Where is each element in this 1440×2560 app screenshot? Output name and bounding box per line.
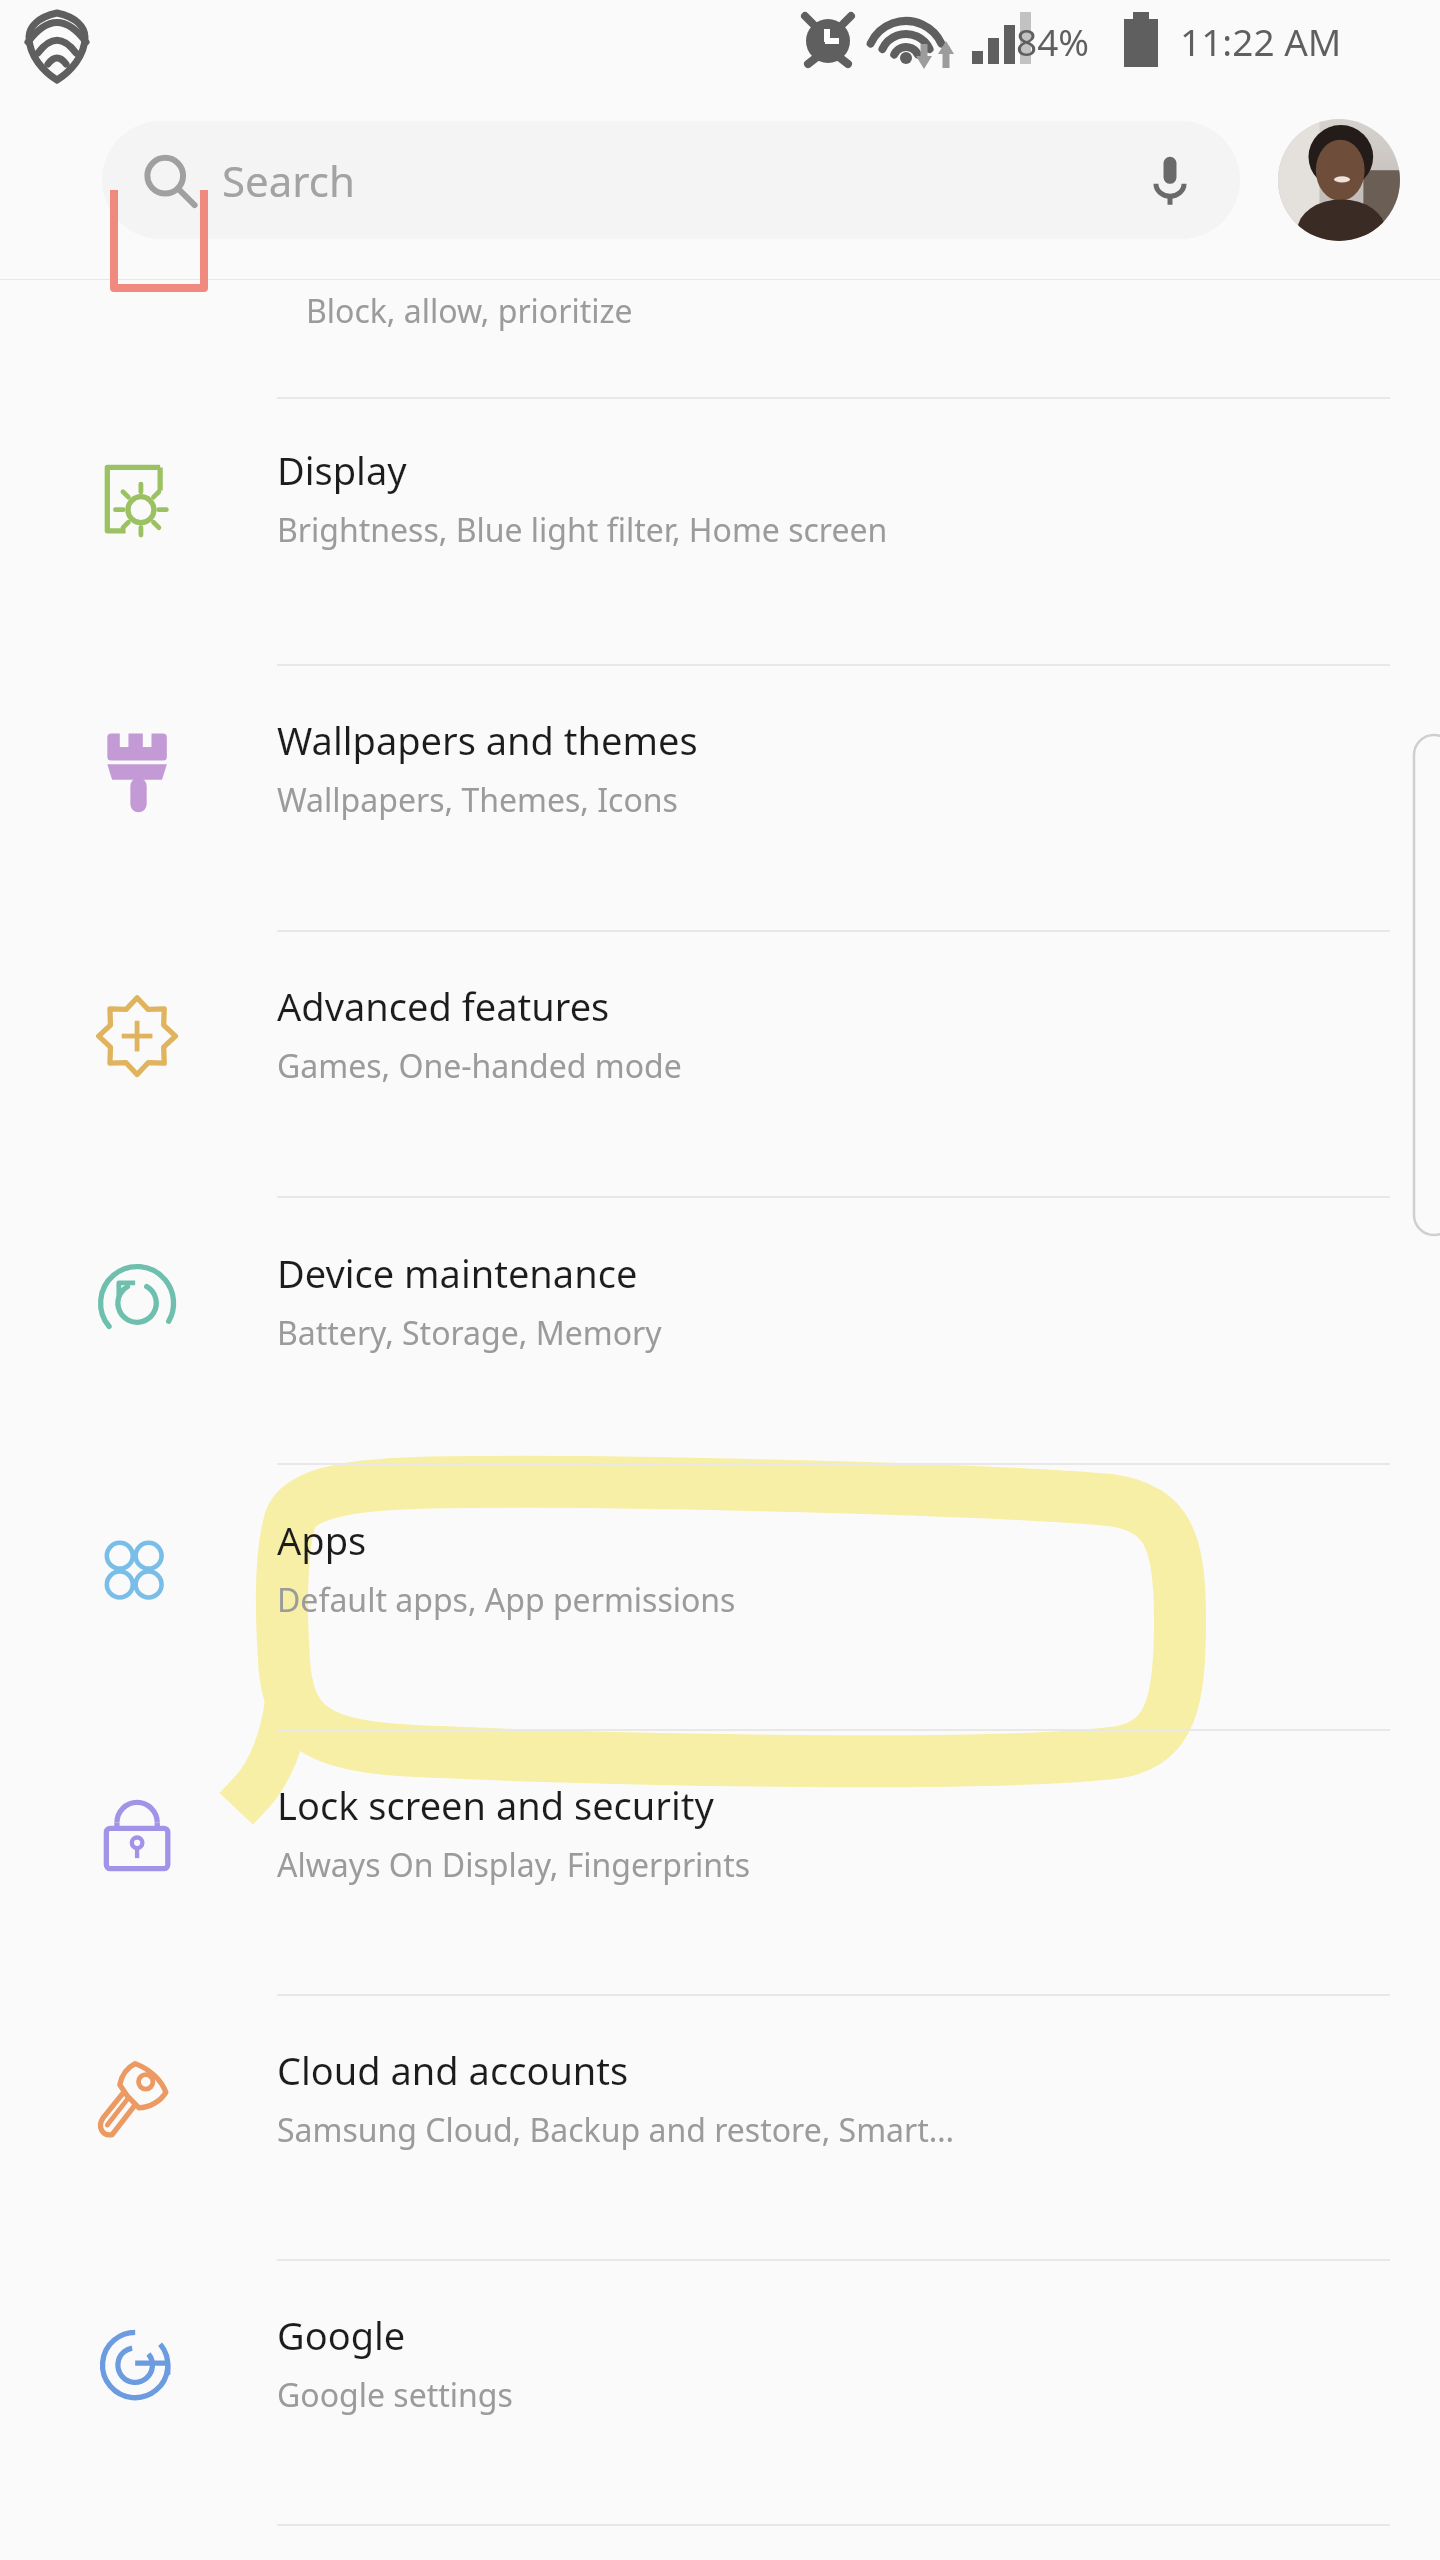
button[interactable]: Voice search [1140,150,1200,210]
button[interactable]: Google [0,2295,1440,2475]
staticText: Block, allow, prioritize [306,289,633,333]
staticText: Wallpapers, Themes, Icons [277,778,678,822]
button[interactable]: Apps [0,1500,1440,1680]
staticText: Apps [277,1514,367,1566]
staticText: Search [222,152,355,209]
staticText: Google [277,2309,406,2361]
staticText: Always On Display, Fingerprints [277,1843,751,1887]
staticText: Samsung Cloud, Backup and restore, Smart… [277,2108,955,2152]
staticText: Default apps, App permissions [277,1578,736,1622]
staticText: Brightness, Blue light filter, Home scre… [277,508,888,552]
button[interactable]: Device maintenance [0,1233,1440,1413]
staticText: Cloud and accounts [277,2044,629,2096]
button[interactable]: Advanced features [0,966,1440,1146]
button[interactable]: Cloud and accounts [0,2030,1440,2210]
staticText: Lock screen and security [277,1779,714,1831]
button[interactable]: Search [102,121,1240,239]
button[interactable]: Profile [1278,119,1400,241]
staticText: Advanced features [277,980,610,1032]
staticText: Battery, Storage, Memory [277,1311,662,1355]
staticText: 11:22 AM [1180,16,1342,66]
staticText: Google settings [277,2373,513,2417]
staticText: Wallpapers and themes [277,714,698,766]
staticText: Device maintenance [277,1247,638,1299]
button[interactable]: Wallpapers and themes [0,700,1440,880]
staticText: Games, One-handed mode [277,1044,682,1088]
button[interactable]: Lock screen and security [0,1765,1440,1945]
staticText: Display [277,444,407,496]
button[interactable]: Display [0,430,1440,610]
staticText: 84% [1016,16,1090,66]
